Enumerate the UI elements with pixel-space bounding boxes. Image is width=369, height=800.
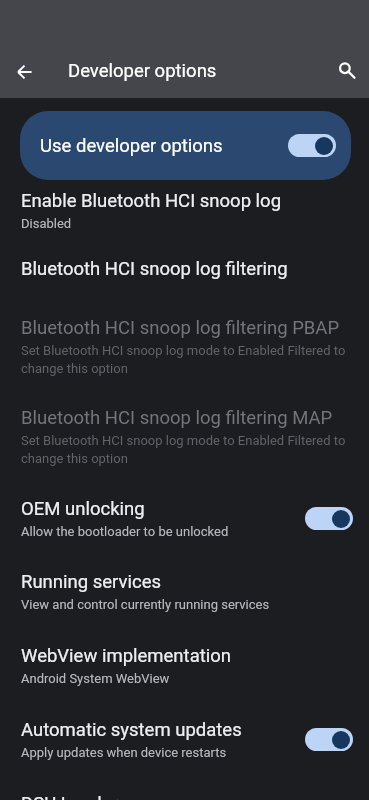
- staticText: DSU Loader: [21, 793, 118, 800]
- staticText: Android System WebView: [21, 671, 170, 686]
- staticText: WebView implementation: [21, 645, 232, 667]
- button[interactable]: OEM unlocking: [0, 476, 369, 549]
- staticText: Enable Bluetooth HCI snoop log: [21, 190, 282, 212]
- staticText: View and control currently running servi…: [21, 597, 270, 612]
- staticText: Apply updates when device restarts: [21, 745, 227, 760]
- button[interactable]: Enable Bluetooth HCI snoop log: [0, 180, 369, 248]
- staticText: Allow the bootloader to be unlocked: [21, 524, 229, 539]
- staticText: Developer options: [68, 60, 217, 82]
- button[interactable]: Use developer options: [20, 111, 351, 180]
- button[interactable]: Bluetooth HCI snoop log filtering MAP: [0, 386, 369, 476]
- staticText: Set Bluetooth HCI snoop log mode to Enab…: [21, 433, 353, 466]
- staticText: Disabled: [21, 216, 72, 231]
- staticText: Use developer options: [40, 135, 288, 157]
- staticText: Bluetooth HCI snoop log filtering MAP: [21, 407, 333, 429]
- button[interactable]: Automatic system updates: [0, 697, 369, 770]
- button[interactable]: WebView implementation: [0, 623, 369, 697]
- staticText: Automatic system updates: [21, 719, 242, 741]
- staticText: Set Bluetooth HCI snoop log mode to Enab…: [21, 343, 353, 376]
- button[interactable]: DSU Loader: [0, 770, 369, 800]
- staticText: Bluetooth HCI snoop log filtering: [21, 258, 288, 280]
- button[interactable]: Bluetooth HCI snoop log filtering: [0, 248, 369, 296]
- button[interactable]: Search: [331, 54, 363, 86]
- button[interactable]: Bluetooth HCI snoop log filtering PBAP: [0, 296, 369, 386]
- button[interactable]: Back: [8, 55, 41, 88]
- staticText: OEM unlocking: [21, 498, 145, 520]
- staticText: Running services: [21, 571, 162, 593]
- staticText: Bluetooth HCI snoop log filtering PBAP: [21, 317, 340, 339]
- button[interactable]: Running services: [0, 549, 369, 623]
